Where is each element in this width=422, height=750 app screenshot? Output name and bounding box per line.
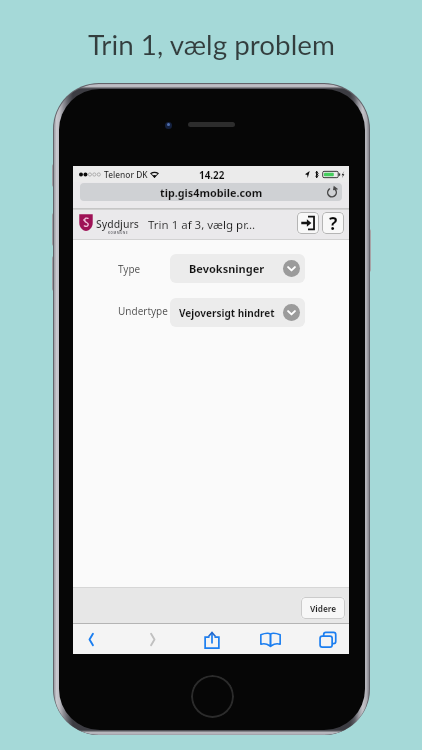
staticText: Bevoksninger bbox=[189, 261, 265, 276]
button[interactable]: Bevoksninger bbox=[170, 254, 305, 283]
staticText: Trin 1 af 3, vælg pr… bbox=[148, 217, 256, 233]
button[interactable]: Forward bbox=[132, 623, 172, 654]
staticText: Trin 1, vælg problem bbox=[88, 28, 335, 61]
button[interactable]: Share bbox=[192, 623, 232, 654]
staticText: Vejoversigt hindret bbox=[179, 306, 275, 320]
button[interactable]: Help bbox=[322, 212, 344, 234]
staticText: Syddjurs bbox=[96, 217, 139, 231]
staticText: Type bbox=[118, 262, 141, 276]
button[interactable]: Vejoversigt hindret bbox=[170, 298, 305, 327]
button[interactable]: tip.gis4mobile.com bbox=[80, 183, 342, 201]
staticText: 14.22 bbox=[199, 168, 225, 181]
button[interactable]: Undertype bbox=[118, 304, 168, 318]
staticText: Undertype bbox=[118, 304, 168, 318]
staticText: Telenor DK bbox=[104, 169, 148, 180]
button[interactable]: Type bbox=[118, 262, 141, 276]
staticText: Videre bbox=[310, 603, 337, 614]
staticText: tip.gis4mobile.com bbox=[160, 185, 263, 200]
button[interactable]: Back bbox=[71, 623, 111, 654]
button[interactable]: Log in bbox=[297, 212, 319, 234]
button[interactable]: Tabs bbox=[308, 623, 348, 654]
staticText: ? bbox=[329, 212, 338, 233]
button[interactable]: Home bbox=[191, 675, 234, 718]
button[interactable]: Bookmarks bbox=[250, 623, 290, 654]
staticText: K O M M U N E bbox=[108, 231, 128, 235]
button[interactable]: Videre bbox=[301, 597, 345, 619]
